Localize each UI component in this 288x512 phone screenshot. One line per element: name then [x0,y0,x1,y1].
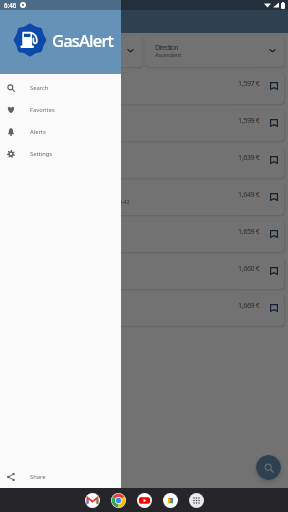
staticText: 1,649 € [238,189,260,199]
button[interactable]: Gmail [85,493,100,508]
staticText: Carretera de Valencia, km 12, 28021 Madr… [11,198,130,206]
button[interactable]: Photos [163,493,178,508]
button[interactable]: Bookmark [268,228,279,239]
staticText: 1,660 € [238,263,260,273]
button[interactable]: Bookmark [268,302,279,313]
button[interactable]: Ballenoil [4,295,284,326]
button[interactable]: Bookmark [268,117,279,128]
staticText: Calle Gran Via, 88 - 28013 Madrid [11,124,90,132]
staticText: GasAlert [52,29,114,52]
button[interactable]: Bookmark [268,191,279,202]
staticText: Favorites [30,106,55,114]
button[interactable]: Search [0,77,121,99]
staticText: 1,659 € [238,226,260,236]
staticText: 6:46 [4,1,17,9]
button[interactable]: Open navigation drawer [0,11,22,33]
button[interactable]: Share [0,466,121,488]
staticText: Direction [155,43,178,53]
staticText: Price [13,51,25,59]
button[interactable]: Favorites [0,99,121,121]
staticText: Repsol [11,76,31,86]
staticText: Settings [30,150,53,158]
button[interactable]: Galp Energia [4,221,284,252]
button[interactable]: Direction [146,36,284,67]
button[interactable]: Repsol [4,73,284,104]
button[interactable]: Order [4,36,142,67]
staticText: 1,599 € [238,115,260,125]
staticText: 1,597 € [238,78,260,88]
button[interactable]: Cepsa [4,110,284,141]
button[interactable]: Bookmark [268,265,279,276]
button[interactable]: Chrome [111,493,126,508]
staticText: BP Oil Espana [11,150,51,160]
button[interactable]: Settings [0,143,121,165]
staticText: 1,639 € [238,152,260,162]
button[interactable]: YouTube [137,493,152,508]
button[interactable]: Bookmark [268,154,279,165]
staticText: Ascendent [155,51,181,59]
button[interactable]: Bookmark [268,80,279,91]
staticText: Search [30,84,49,92]
staticText: 1,669 € [238,300,260,310]
staticText: GasAlert [25,14,70,29]
staticText: Alerts [30,128,46,136]
staticText: Avenida de la Constitucion, 12 - 28012 [11,87,102,95]
button[interactable]: Petroprix [4,258,284,289]
button[interactable]: Shell [4,184,284,215]
button[interactable]: Alerts [0,121,121,143]
staticText: Share [30,473,46,481]
button[interactable]: All apps [189,493,204,508]
button[interactable]: Search [256,455,281,480]
staticText: Order [13,43,29,53]
button[interactable]: BP Oil Espana [4,147,284,178]
